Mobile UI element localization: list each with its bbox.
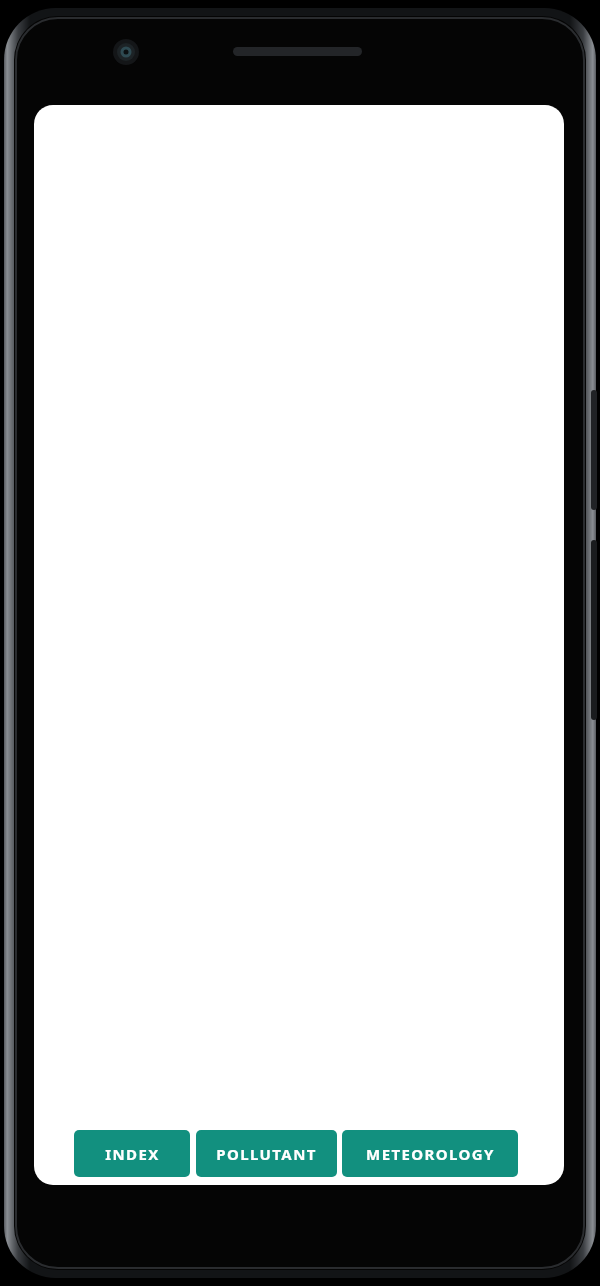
button[interactable]: INDEX [74,1130,190,1177]
button[interactable]: METEOROLOGY [342,1130,518,1177]
staticText: METEOROLOGY [366,1144,495,1164]
button[interactable]: POLLUTANT [196,1130,337,1177]
staticText: INDEX [105,1144,160,1164]
staticText: POLLUTANT [216,1144,317,1164]
